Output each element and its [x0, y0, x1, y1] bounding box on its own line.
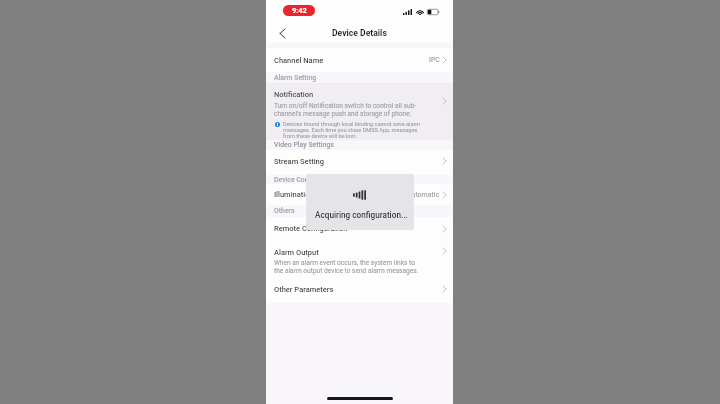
staticText: Turn on/off Notification switch to contr… — [274, 102, 417, 118]
staticText: IPC — [429, 56, 440, 64]
button[interactable]: Other Parameters — [266, 277, 453, 301]
staticText: Others — [274, 207, 295, 215]
staticText: Automatic — [407, 191, 440, 199]
staticText: Devices bound through local binding cann… — [283, 121, 421, 139]
staticText: When an alarm event occurs, the system l… — [274, 259, 419, 275]
staticText: Stream Setting — [274, 157, 324, 166]
staticText: Acquiring configuration... — [315, 210, 408, 220]
button[interactable]: Illumination — [266, 184, 453, 205]
button[interactable] — [266, 83, 453, 140]
staticText: Video Play Settings — [274, 141, 334, 149]
staticText: Illumination — [274, 190, 314, 199]
button[interactable] — [266, 240, 453, 277]
staticText: Alarm Setting — [274, 74, 317, 82]
staticText: Other Parameters — [274, 285, 334, 294]
staticText: Alarm Output — [274, 248, 319, 257]
staticText: 9:42 — [292, 6, 307, 15]
button[interactable]: Stream Setting — [266, 150, 453, 172]
button[interactable]: Back — [272, 22, 292, 44]
staticText: Device Details — [332, 28, 387, 38]
staticText: Channel Name — [274, 56, 324, 65]
staticText: Remote Configuration — [274, 224, 348, 233]
button[interactable]: Channel Name — [266, 48, 453, 72]
staticText: Device Configuration — [274, 176, 339, 184]
button[interactable]: Remote Configuration — [266, 217, 453, 240]
staticText: Notification — [274, 90, 314, 99]
